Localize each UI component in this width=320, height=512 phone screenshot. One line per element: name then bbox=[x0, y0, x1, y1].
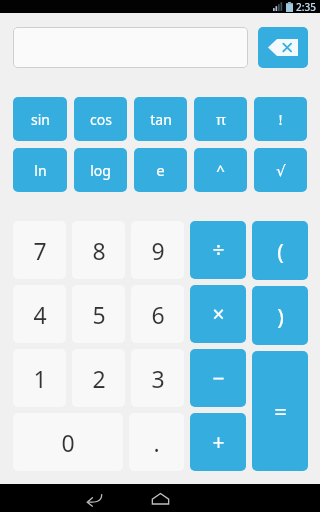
staticText: 2:35 bbox=[296, 0, 316, 13]
staticText: ÷ bbox=[212, 236, 225, 265]
staticText: + bbox=[212, 428, 225, 457]
button[interactable]: cos bbox=[74, 97, 127, 141]
button[interactable]: tan bbox=[134, 97, 187, 141]
staticText: 6 bbox=[151, 299, 165, 330]
staticText: − bbox=[212, 364, 225, 393]
staticText: tan bbox=[150, 110, 172, 129]
button[interactable]: 7 bbox=[13, 221, 66, 279]
button[interactable]: ! bbox=[254, 97, 307, 141]
button[interactable]: ( bbox=[252, 221, 308, 280]
staticText: . bbox=[153, 427, 160, 458]
staticText: ! bbox=[278, 109, 283, 129]
button[interactable]: . bbox=[129, 413, 184, 471]
button[interactable]: 4 bbox=[13, 285, 66, 343]
button[interactable]: 0 bbox=[13, 413, 123, 471]
button[interactable]: Home bbox=[144, 484, 176, 512]
button[interactable]: ÷ bbox=[190, 221, 246, 279]
staticText: 5 bbox=[92, 299, 106, 330]
staticText: sin bbox=[31, 110, 50, 129]
button[interactable]: 5 bbox=[72, 285, 125, 343]
button[interactable]: ^ bbox=[194, 148, 247, 192]
staticText: 2 bbox=[92, 363, 106, 394]
button[interactable]: Back bbox=[78, 484, 110, 512]
button[interactable]: ln bbox=[13, 148, 67, 192]
staticText: × bbox=[212, 300, 225, 329]
button[interactable]: sin bbox=[13, 97, 67, 141]
button[interactable]: 6 bbox=[131, 285, 184, 343]
button[interactable]: 8 bbox=[72, 221, 125, 279]
button[interactable]: − bbox=[190, 349, 246, 407]
button[interactable]: √ bbox=[254, 148, 307, 192]
staticText: π bbox=[216, 109, 226, 129]
staticText: 0 bbox=[61, 427, 75, 458]
staticText: log bbox=[90, 161, 111, 180]
button[interactable]: = bbox=[252, 351, 308, 471]
staticText: e bbox=[156, 160, 165, 180]
staticText: √ bbox=[276, 162, 286, 179]
button[interactable]: × bbox=[190, 285, 246, 343]
staticText: 1 bbox=[33, 363, 47, 394]
button[interactable]: e bbox=[134, 148, 187, 192]
button[interactable]: log bbox=[74, 148, 127, 192]
button[interactable] bbox=[13, 27, 248, 68]
button[interactable]: ) bbox=[252, 286, 308, 345]
staticText: 3 bbox=[151, 363, 165, 394]
button[interactable]: π bbox=[194, 97, 247, 141]
staticText: ) bbox=[277, 301, 284, 331]
staticText: ^ bbox=[216, 160, 225, 180]
button[interactable]: 1 bbox=[13, 349, 66, 407]
button[interactable]: Backspace bbox=[258, 27, 308, 68]
button[interactable]: 9 bbox=[131, 221, 184, 279]
staticText: 9 bbox=[151, 235, 165, 266]
staticText: 4 bbox=[33, 299, 47, 330]
staticText: 7 bbox=[33, 235, 47, 266]
button[interactable]: + bbox=[190, 413, 246, 471]
button[interactable]: 2 bbox=[72, 349, 125, 407]
staticText: cos bbox=[90, 110, 112, 129]
staticText: = bbox=[274, 396, 287, 426]
staticText: ( bbox=[277, 236, 284, 266]
staticText: 8 bbox=[92, 235, 106, 266]
button[interactable]: 3 bbox=[131, 349, 184, 407]
staticText: ln bbox=[34, 161, 47, 180]
